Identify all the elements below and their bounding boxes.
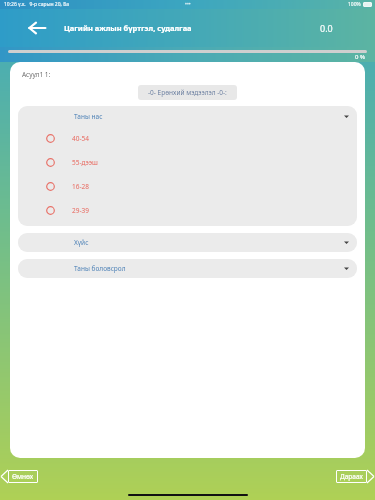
staticText: 0.0 <box>320 22 333 34</box>
staticText: Асуул1 1: <box>22 70 51 79</box>
staticText: 10:26 ү.х. 9-р сарын 20, Ба <box>4 1 70 8</box>
staticText: Дараах <box>340 472 363 481</box>
button[interactable]: Таны боловсрол <box>18 259 357 278</box>
staticText: 55-дээш <box>72 158 98 167</box>
staticText: 29-39 <box>72 206 89 215</box>
button[interactable]: Өмнөх <box>0 470 39 483</box>
staticText: Өмнөх <box>12 472 34 481</box>
staticText: -0- Ерөнхий мэдээлэл -0-: <box>148 88 227 97</box>
button[interactable]: Back <box>22 13 52 43</box>
button[interactable]: 40-54 <box>18 126 357 150</box>
button[interactable]: 55-дээш <box>18 150 357 174</box>
button[interactable]: Хүйс <box>18 233 357 252</box>
staticText: 40-54 <box>72 134 89 143</box>
button[interactable]: Таны нас <box>18 106 357 126</box>
staticText: Хүйс <box>74 238 89 247</box>
staticText: Цагийн ажлын бүртгэл, судалгаа <box>64 23 192 33</box>
staticText: 100% <box>348 1 361 8</box>
button[interactable]: -0- Ерөнхий мэдээлэл -0-: <box>148 88 227 97</box>
staticText: Таны боловсрол <box>74 264 126 273</box>
button[interactable]: Дараах <box>335 470 375 483</box>
staticText: 16-28 <box>72 182 89 191</box>
staticText: ••• <box>185 1 191 8</box>
staticText: 0 % <box>355 53 365 61</box>
button[interactable]: 29-39 <box>18 198 357 222</box>
staticText: Таны нас <box>74 112 103 121</box>
button[interactable]: 16-28 <box>18 174 357 198</box>
